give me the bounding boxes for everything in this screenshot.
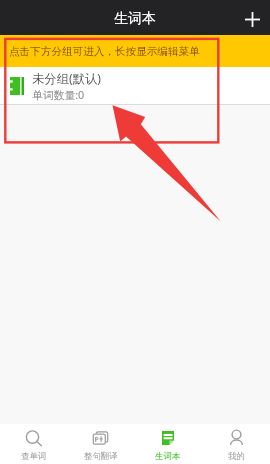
- staticText: 整句翻译: [84, 451, 118, 462]
- button[interactable]: 查单词: [0, 424, 67, 464]
- staticText: 生词本: [114, 10, 156, 28]
- staticText: 查单词: [21, 451, 47, 462]
- staticText: 单词数量:0: [32, 87, 85, 102]
- staticText: 生词本: [155, 451, 181, 462]
- staticText: 未分组(默认): [32, 70, 101, 87]
- staticText: 我的: [228, 451, 245, 462]
- button[interactable]: 我的: [202, 424, 270, 464]
- button[interactable]: 整句翻译: [67, 424, 134, 464]
- button[interactable]: 未分组(默认): [0, 67, 270, 105]
- button[interactable]: Add: [234, 0, 270, 35]
- button[interactable]: 生词本: [134, 424, 202, 464]
- button[interactable]: 点击下方分组可进入，长按显示编辑菜单: [0, 35, 270, 67]
- staticText: 点击下方分组可进入，长按显示编辑菜单: [9, 45, 200, 58]
